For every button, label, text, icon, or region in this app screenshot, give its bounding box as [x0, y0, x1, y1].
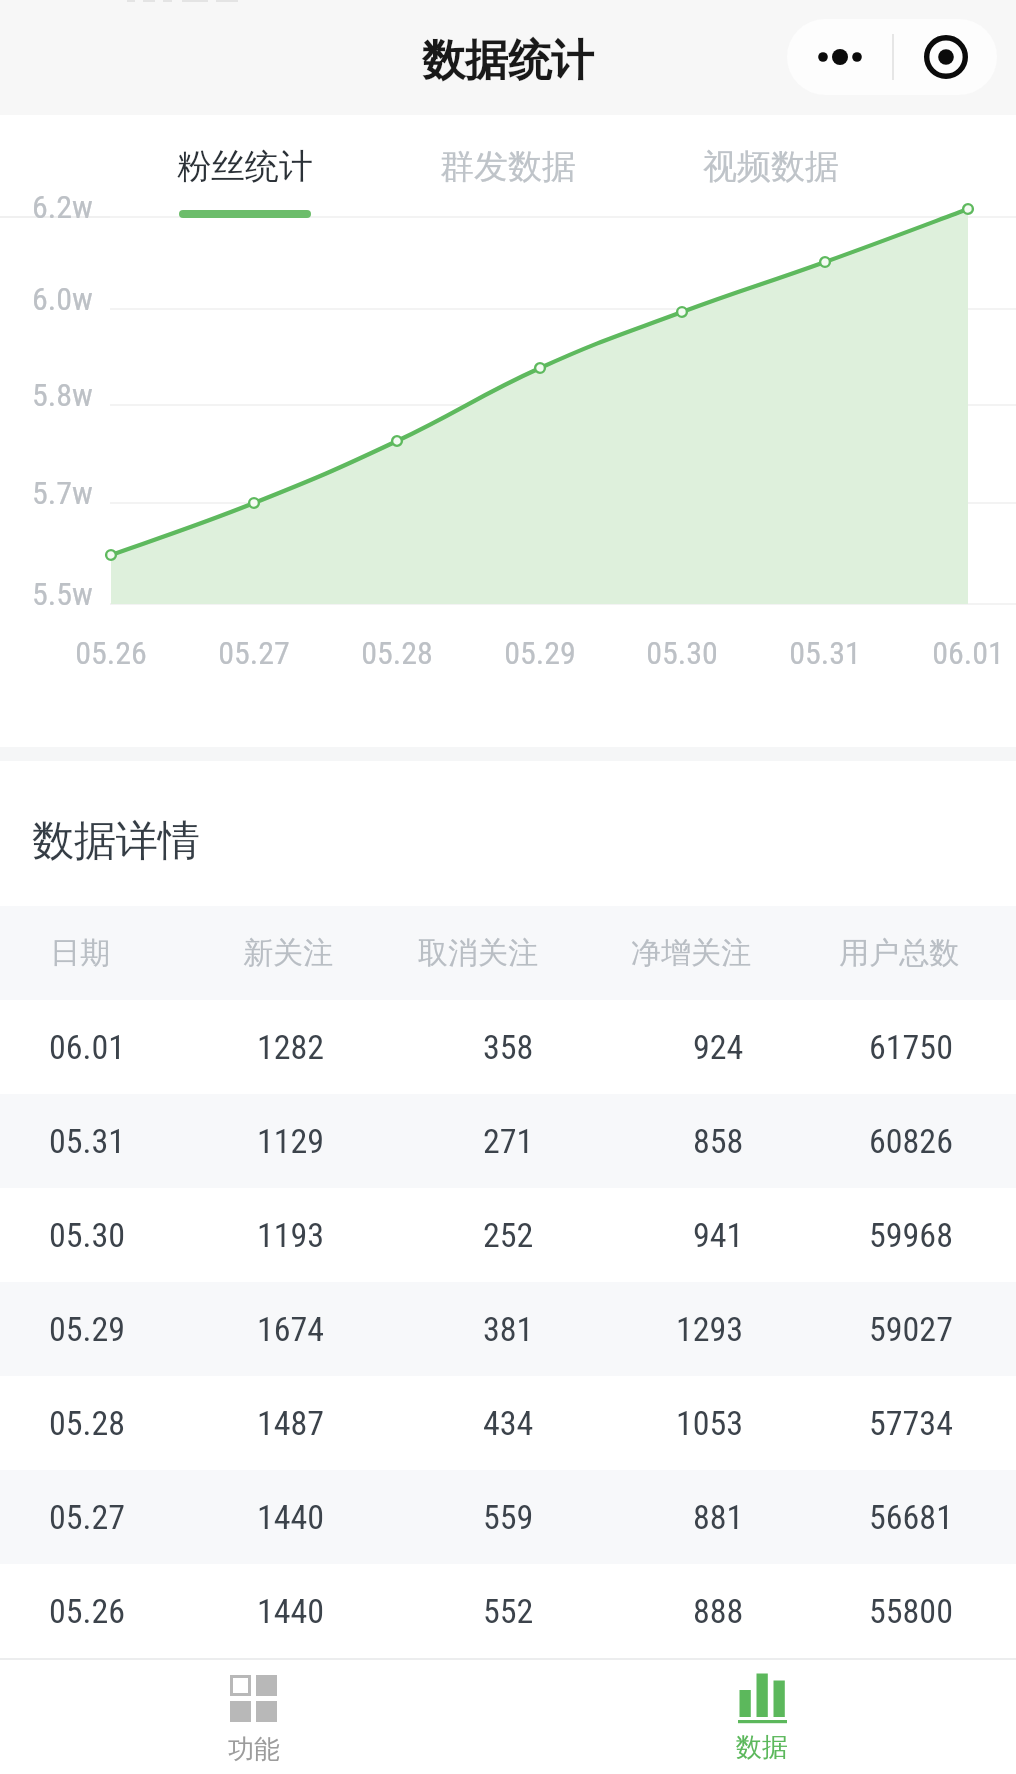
staticText: 05.30	[49, 1215, 126, 1255]
staticText: 6.0w	[32, 280, 93, 318]
staticText: 日期	[50, 934, 110, 972]
staticText: 1282	[257, 1027, 325, 1067]
staticText: 56681	[869, 1497, 953, 1537]
staticText: 59968	[869, 1215, 953, 1255]
staticText: 881	[693, 1497, 744, 1537]
staticText: 888	[693, 1591, 744, 1631]
staticText: 用户总数	[839, 934, 959, 972]
staticText: 1053	[676, 1403, 744, 1443]
staticText: 05.27	[49, 1497, 126, 1537]
staticText: 新关注	[243, 934, 333, 972]
staticText: 5.8w	[32, 376, 93, 414]
staticText: 05.31	[49, 1121, 126, 1161]
staticText: 1129	[257, 1121, 325, 1161]
staticText: 05.31	[789, 634, 861, 672]
staticText: 06.01	[49, 1027, 126, 1067]
staticText: 271	[483, 1121, 534, 1161]
staticText: 5.5w	[32, 575, 93, 613]
staticText: 05.29	[504, 634, 576, 672]
button[interactable]: 05.30	[0, 1188, 1016, 1282]
staticText: 358	[483, 1027, 534, 1067]
staticText: 59027	[869, 1309, 953, 1349]
staticText: 55800	[869, 1591, 953, 1631]
button[interactable]: 05.26	[0, 1564, 1016, 1658]
staticText: 05.30	[646, 634, 718, 672]
staticText: 924	[693, 1027, 744, 1067]
staticText: 858	[693, 1121, 744, 1161]
staticText: 粉丝统计	[177, 145, 313, 188]
button[interactable]: 粉丝统计	[113, 145, 376, 217]
button[interactable]: 05.31	[0, 1094, 1016, 1188]
staticText: 06.01	[932, 634, 1004, 672]
staticText: 1193	[257, 1215, 325, 1255]
staticText: 1674	[257, 1309, 325, 1349]
staticText: 05.26	[75, 634, 147, 672]
staticText: 1440	[257, 1497, 325, 1537]
staticText: 数据统计	[422, 34, 594, 88]
staticText: 941	[693, 1215, 744, 1255]
button[interactable]: 05.29	[0, 1282, 1016, 1376]
staticText: 视频数据	[703, 145, 839, 188]
staticText: 1440	[257, 1591, 325, 1631]
button[interactable]: Close mini program	[894, 19, 997, 95]
staticText: 552	[483, 1591, 534, 1631]
button[interactable]: 数据	[508, 1660, 1016, 1774]
staticText: 05.29	[49, 1309, 126, 1349]
button[interactable]: 05.28	[0, 1376, 1016, 1470]
staticText: 05.27	[218, 634, 290, 672]
staticText: 6.2w	[32, 188, 93, 226]
staticText: 05.26	[49, 1591, 126, 1631]
button[interactable]: 视频数据	[639, 145, 902, 217]
button[interactable]: 功能	[0, 1660, 508, 1774]
button[interactable]: More options	[787, 19, 892, 95]
staticText: 57734	[869, 1403, 953, 1443]
staticText: 1487	[257, 1403, 325, 1443]
staticText: 功能	[228, 1733, 280, 1766]
staticText: 取消关注	[418, 934, 538, 972]
staticText: 1293	[676, 1309, 744, 1349]
staticText: 数据详情	[32, 815, 200, 868]
staticText: 5.7w	[32, 474, 93, 512]
button[interactable]: 群发数据	[376, 145, 639, 217]
staticText: 252	[483, 1215, 534, 1255]
staticText: 434	[483, 1403, 534, 1443]
staticText: 559	[483, 1497, 534, 1537]
staticText: 381	[483, 1309, 534, 1349]
staticText: 05.28	[49, 1403, 126, 1443]
staticText: 60826	[869, 1121, 953, 1161]
button[interactable]: 06.01	[0, 1000, 1016, 1094]
button[interactable]: 05.27	[0, 1470, 1016, 1564]
staticText: 净增关注	[631, 934, 751, 972]
staticText: 群发数据	[440, 145, 576, 188]
staticText: 数据	[736, 1731, 788, 1764]
staticText: 61750	[869, 1027, 953, 1067]
staticText: 05.28	[361, 634, 433, 672]
